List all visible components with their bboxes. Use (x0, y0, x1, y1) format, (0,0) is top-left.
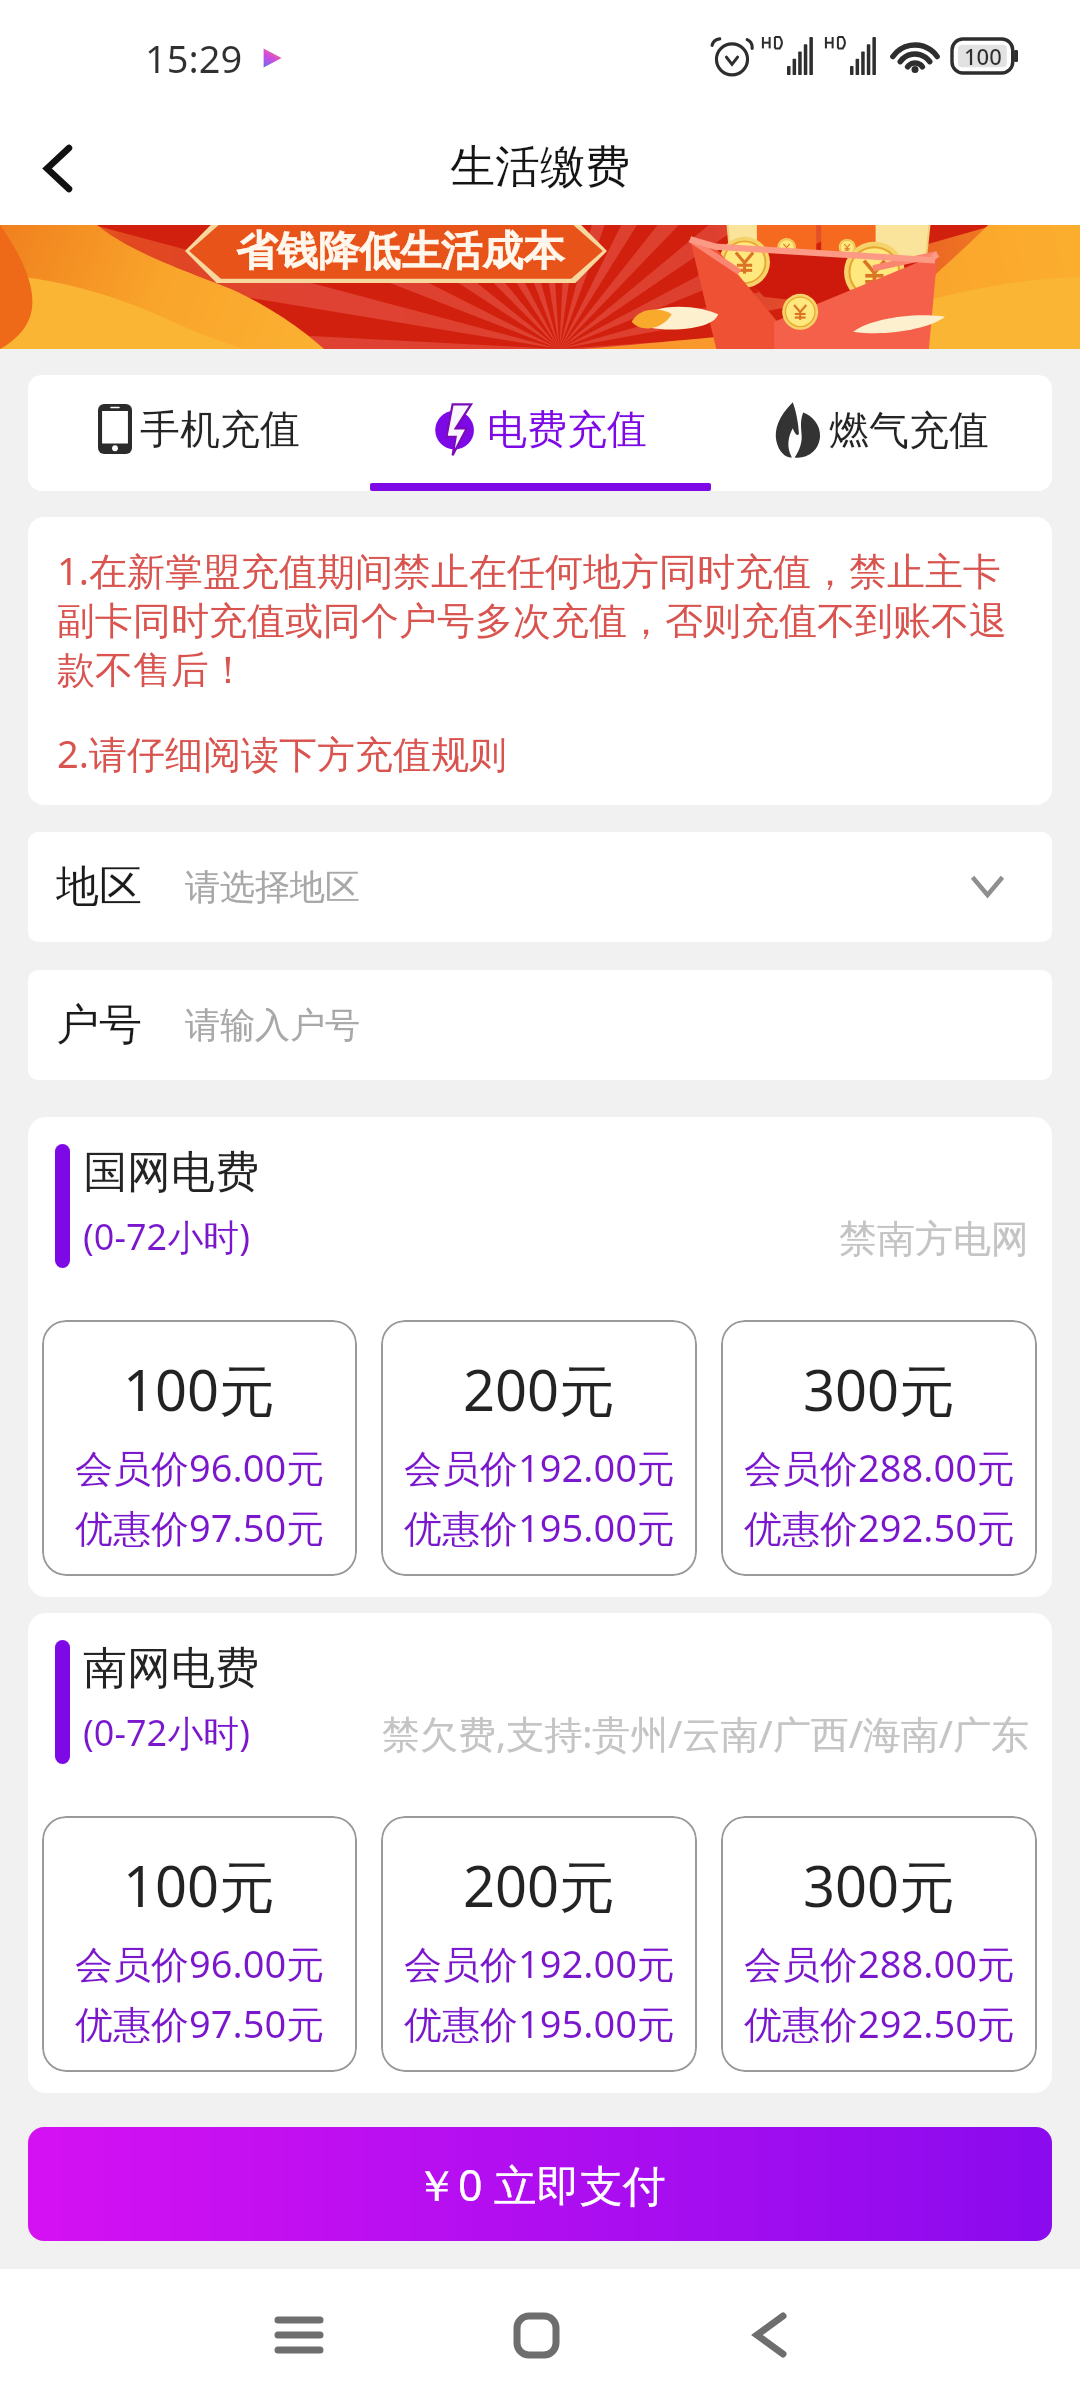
button[interactable]: 100元 (42, 1816, 357, 2072)
button[interactable]: ￥0 立即支付 (28, 2127, 1052, 2241)
button[interactable]: Back (20, 130, 96, 206)
staticText: 禁欠费,支持:贵州/云南/广西/海南/广东 (382, 1707, 1029, 1759)
staticText: 请输入户号 (185, 1003, 360, 1047)
staticText: 生活缴费 (450, 139, 630, 196)
staticText: 优惠价195.00元 (404, 1997, 675, 2049)
button[interactable]: 200元 (381, 1816, 697, 2072)
staticText: 1.在新掌盟充值期间禁止在任何地方同时充值，禁止主卡副卡同时充值或同个户号多次充… (57, 544, 1023, 694)
staticText: 2.请仔细阅读下方充值规则 (57, 727, 507, 779)
staticText: (0-72小时) (83, 1212, 250, 1261)
staticText: 请选择地区 (185, 865, 360, 909)
button[interactable]: 300元 (721, 1816, 1037, 2072)
button[interactable]: Home (496, 2295, 576, 2375)
staticText: 禁南方电网 (839, 1215, 1029, 1263)
staticText: 电费充值 (487, 404, 647, 454)
button[interactable]: Recent apps (259, 2295, 339, 2375)
staticText: 优惠价292.50元 (744, 1501, 1015, 1553)
staticText: 南网电费 (83, 1641, 259, 1696)
staticText: 会员价192.00元 (404, 1441, 675, 1493)
staticText: 优惠价195.00元 (404, 1501, 675, 1553)
staticText: ￥0 立即支付 (415, 2155, 666, 2214)
staticText: 优惠价292.50元 (744, 1997, 1015, 2049)
staticText: 地区 (56, 860, 142, 914)
staticText: 15:29 (145, 32, 243, 84)
staticText: 会员价96.00元 (75, 1937, 325, 1989)
staticText: 优惠价97.50元 (75, 1501, 325, 1553)
staticText: 200元 (463, 1847, 616, 1923)
button[interactable]: 地区 (28, 832, 1052, 942)
staticText: 300元 (803, 1847, 956, 1923)
button[interactable]: 200元 (381, 1320, 697, 1576)
staticText: 户号 (56, 998, 142, 1052)
staticText: 100元 (123, 1847, 276, 1923)
staticText: 300元 (803, 1351, 956, 1427)
staticText: 会员价288.00元 (744, 1441, 1015, 1493)
staticText: 国网电费 (83, 1145, 259, 1200)
staticText: 手机充值 (140, 404, 300, 454)
button[interactable]: 300元 (721, 1320, 1037, 1576)
staticText: 会员价192.00元 (404, 1937, 675, 1989)
button[interactable]: 手机充值 (28, 375, 370, 491)
button[interactable]: 户号 (28, 970, 1052, 1080)
staticText: 省钱降低生活成本 (236, 226, 564, 278)
staticText: 会员价288.00元 (744, 1937, 1015, 1989)
staticText: 100 (964, 41, 1002, 71)
button[interactable]: Back (730, 2295, 810, 2375)
button[interactable]: 电费充值 (370, 375, 711, 491)
staticText: 燃气充值 (829, 405, 989, 455)
staticText: (0-72小时) (83, 1708, 250, 1757)
button[interactable]: 100元 (42, 1320, 357, 1576)
staticText: 会员价96.00元 (75, 1441, 325, 1493)
button[interactable]: 燃气充值 (711, 375, 1052, 491)
staticText: 100元 (123, 1351, 276, 1427)
staticText: 优惠价97.50元 (75, 1997, 325, 2049)
staticText: 200元 (463, 1351, 616, 1427)
